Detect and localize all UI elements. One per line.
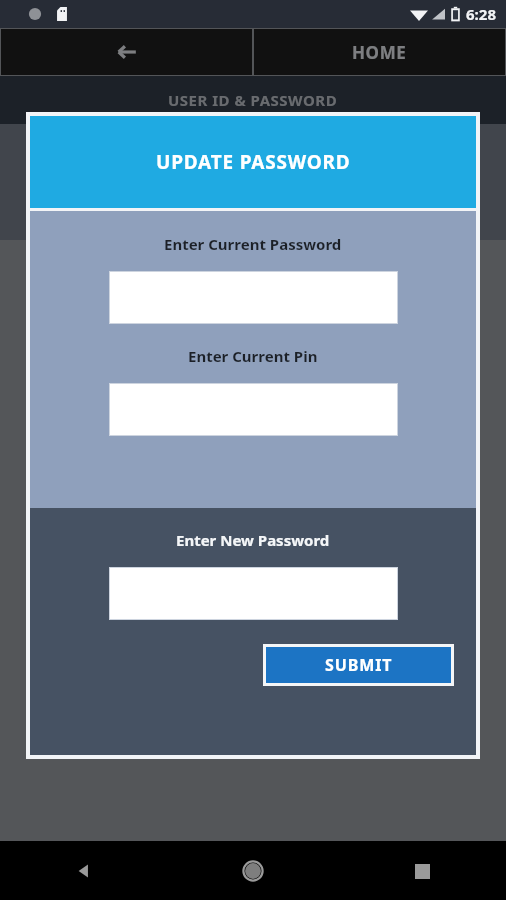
staticText: 6:28 [466, 4, 496, 24]
staticText: Enter Current Password [164, 234, 342, 254]
button[interactable]: SUBMIT [266, 647, 451, 683]
staticText: USER ID & PASSWORD [168, 90, 338, 110]
button[interactable]: Back [1, 29, 252, 75]
staticText: UPDATE PASSWORD [156, 149, 351, 175]
button[interactable]: Home [230, 848, 276, 894]
button[interactable]: HOME [254, 29, 505, 75]
staticText: Enter Current Pin [188, 346, 318, 366]
button[interactable]: Back [61, 848, 107, 894]
button[interactable]: Recents [399, 848, 445, 894]
staticText: SUBMIT [325, 654, 393, 676]
staticText: Enter New Password [176, 530, 330, 550]
staticText: HOME [352, 41, 407, 64]
